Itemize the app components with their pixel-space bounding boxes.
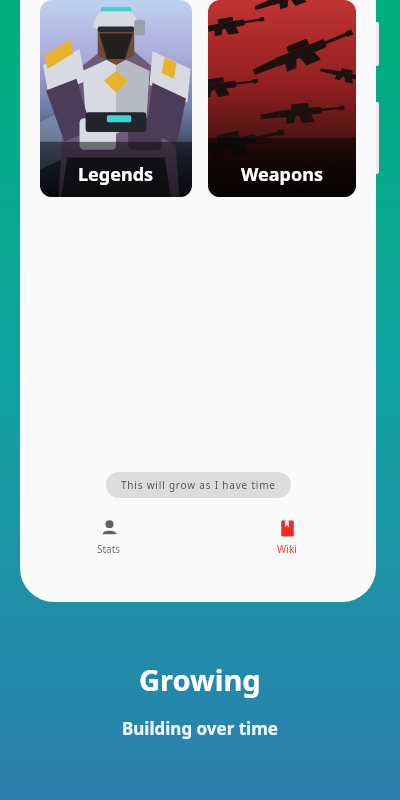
staticText: Wiki	[277, 542, 297, 556]
staticText: Legends	[78, 162, 154, 187]
staticText: This will grow as I have time	[121, 478, 276, 492]
staticText: Weapons	[241, 162, 323, 187]
button[interactable]: Legends	[40, 0, 192, 197]
button[interactable]: Weapons	[208, 0, 356, 197]
staticText: Growing	[139, 660, 261, 699]
button[interactable]: Wiki	[263, 516, 311, 559]
button[interactable]: Stats	[83, 516, 135, 559]
staticText: Stats	[97, 542, 121, 556]
staticText: Building over time	[122, 717, 278, 740]
